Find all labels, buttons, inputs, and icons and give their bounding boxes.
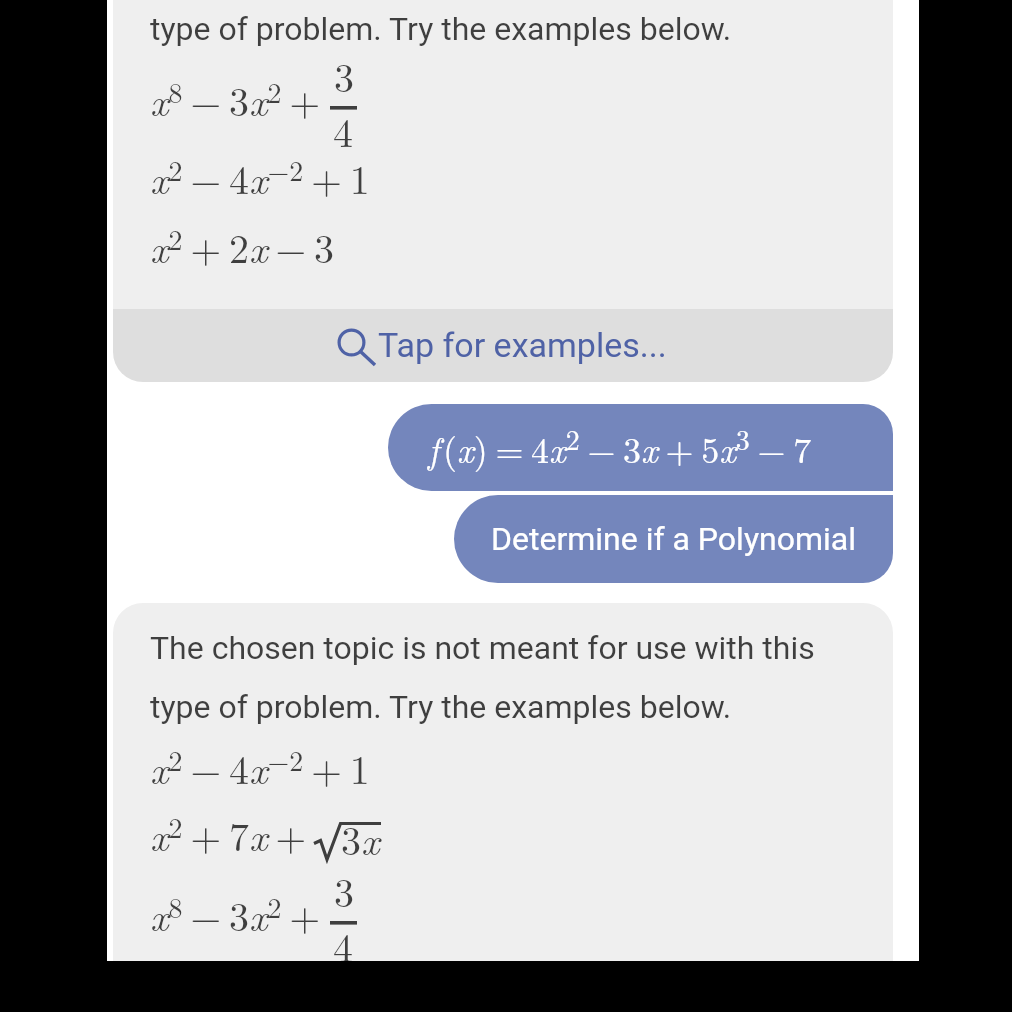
staticText: x2 + 2x − 3	[150, 218, 334, 275]
button[interactable]: f (x) = 4x2 − 3x + 5x3 − 7	[388, 404, 893, 491]
staticText: type of problem. Try the examples below.	[150, 10, 732, 48]
button[interactable]: Determine if a Polynomial	[454, 495, 893, 583]
staticText: x8 − 3x2 +	[150, 886, 328, 943]
staticText: The chosen topic is not meant for use wi…	[150, 629, 815, 726]
staticText: x2 − 4x−2 + 1	[150, 149, 370, 206]
staticText: x8 − 3x2 +	[150, 71, 328, 128]
staticText: x2 + 7x +	[150, 806, 314, 863]
staticText: 4	[333, 917, 353, 961]
staticText: 3x	[341, 810, 380, 867]
staticText: f (x) = 4x2 − 3x + 5x3 − 7	[428, 418, 812, 473]
button[interactable]: Search	[113, 309, 893, 382]
other: Search	[337, 328, 377, 368]
staticText: 3	[334, 862, 354, 919]
staticText: Determine if a Polynomial	[491, 520, 856, 558]
staticText: 3	[334, 47, 354, 104]
staticText: Tap for examples...	[378, 325, 667, 365]
staticText: 4	[333, 102, 353, 159]
staticText: x2 − 4x−2 + 1	[150, 739, 370, 796]
